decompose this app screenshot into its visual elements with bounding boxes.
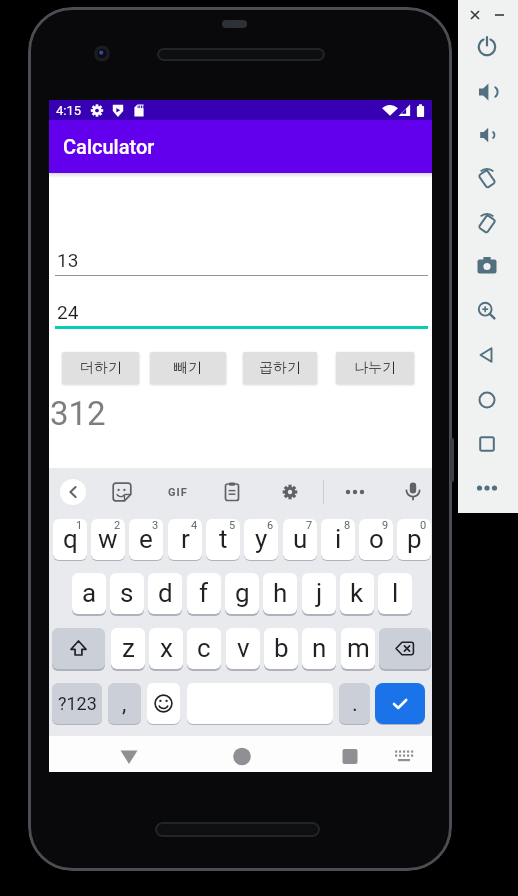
staticText: 3 xyxy=(152,519,159,532)
button[interactable]: c xyxy=(187,628,221,669)
button[interactable]: x xyxy=(149,628,183,669)
button[interactable] xyxy=(469,161,505,197)
button[interactable]: l xyxy=(378,573,412,614)
staticText: q xyxy=(63,524,78,554)
staticText: e xyxy=(139,524,153,554)
button[interactable] xyxy=(379,628,431,669)
button[interactable] xyxy=(469,206,505,242)
button[interactable]: j xyxy=(302,573,336,614)
staticText: l xyxy=(392,578,399,608)
button[interactable] xyxy=(217,477,247,507)
button[interactable]: g xyxy=(225,573,259,614)
button[interactable] xyxy=(469,293,505,329)
button[interactable] xyxy=(340,477,370,507)
staticText: b xyxy=(274,633,289,663)
button[interactable]: m xyxy=(341,628,375,669)
button[interactable] xyxy=(52,628,105,669)
button[interactable]: 곱하기 xyxy=(243,352,317,384)
button[interactable]: 13 xyxy=(55,240,428,277)
staticText: 9 xyxy=(382,519,389,532)
button[interactable]: s xyxy=(110,573,144,614)
button[interactable]: GIF xyxy=(163,477,193,507)
button[interactable]: v xyxy=(226,628,260,669)
staticText: m xyxy=(347,633,370,663)
button[interactable]: 더하기 xyxy=(62,352,139,384)
button[interactable]: u xyxy=(283,519,317,560)
button[interactable]: o xyxy=(359,519,393,560)
button[interactable] xyxy=(387,736,423,772)
button[interactable]: f xyxy=(187,573,221,614)
button[interactable]: k xyxy=(340,573,374,614)
staticText: 0 xyxy=(420,519,427,532)
button[interactable] xyxy=(469,382,505,418)
button[interactable] xyxy=(469,74,505,110)
button[interactable]: . xyxy=(339,683,370,724)
button[interactable]: y xyxy=(244,519,278,560)
button[interactable] xyxy=(469,470,505,506)
button[interactable]: p xyxy=(397,519,431,560)
staticText: ?123 xyxy=(58,693,97,714)
button[interactable]: h xyxy=(263,573,297,614)
staticText: , xyxy=(122,691,127,717)
staticText: 빼기 xyxy=(174,359,202,377)
staticText: j xyxy=(316,578,323,608)
staticText: n xyxy=(312,633,327,663)
staticText: i xyxy=(335,524,342,554)
button[interactable] xyxy=(147,683,180,724)
button[interactable] xyxy=(330,736,370,772)
button[interactable] xyxy=(469,248,505,284)
button[interactable]: ?123 xyxy=(52,683,102,724)
button[interactable] xyxy=(469,337,505,373)
staticText: . xyxy=(352,691,358,717)
button[interactable]: q xyxy=(53,519,87,560)
staticText: 4 xyxy=(191,519,198,532)
button[interactable]: d xyxy=(148,573,182,614)
staticText: 4:15 xyxy=(56,103,82,118)
staticText: h xyxy=(273,578,288,608)
button[interactable] xyxy=(469,29,505,65)
button[interactable]: 나누기 xyxy=(336,352,414,384)
button[interactable]: 24 xyxy=(55,291,428,329)
staticText: d xyxy=(158,578,173,608)
button[interactable]: , xyxy=(108,683,141,724)
button[interactable]: w xyxy=(91,519,125,560)
staticText: g xyxy=(235,578,250,608)
staticText: k xyxy=(350,578,364,608)
button[interactable] xyxy=(398,477,428,507)
button[interactable] xyxy=(107,477,137,507)
staticText: y xyxy=(255,524,268,554)
staticText: a xyxy=(82,578,97,608)
staticText: f xyxy=(199,578,209,608)
staticText: Calculator xyxy=(63,135,155,158)
staticText: r xyxy=(181,524,190,554)
staticText: z xyxy=(122,633,135,663)
staticText: p xyxy=(407,524,422,554)
staticText: 8 xyxy=(344,519,351,532)
button[interactable]: i xyxy=(321,519,355,560)
button[interactable] xyxy=(469,426,505,462)
button[interactable]: z xyxy=(111,628,145,669)
button[interactable]: e xyxy=(129,519,163,560)
button[interactable] xyxy=(222,736,262,772)
staticText: x xyxy=(160,633,173,663)
button[interactable]: r xyxy=(168,519,202,560)
button[interactable]: t xyxy=(206,519,240,560)
staticText: 24 xyxy=(57,301,79,323)
staticText: 나누기 xyxy=(354,359,396,377)
button[interactable]: a xyxy=(72,573,106,614)
button[interactable]: 빼기 xyxy=(150,352,226,384)
button[interactable]: b xyxy=(264,628,298,669)
staticText: o xyxy=(369,524,384,554)
staticText: 2 xyxy=(114,519,121,532)
staticText: u xyxy=(293,524,308,554)
staticText: w xyxy=(98,524,118,554)
button[interactable] xyxy=(375,683,425,724)
button[interactable] xyxy=(275,477,305,507)
button[interactable] xyxy=(109,736,149,772)
button[interactable]: n xyxy=(302,628,336,669)
button[interactable] xyxy=(60,479,86,505)
staticText: 7 xyxy=(306,519,313,532)
staticText: 1 xyxy=(76,519,83,532)
button[interactable] xyxy=(469,117,505,153)
